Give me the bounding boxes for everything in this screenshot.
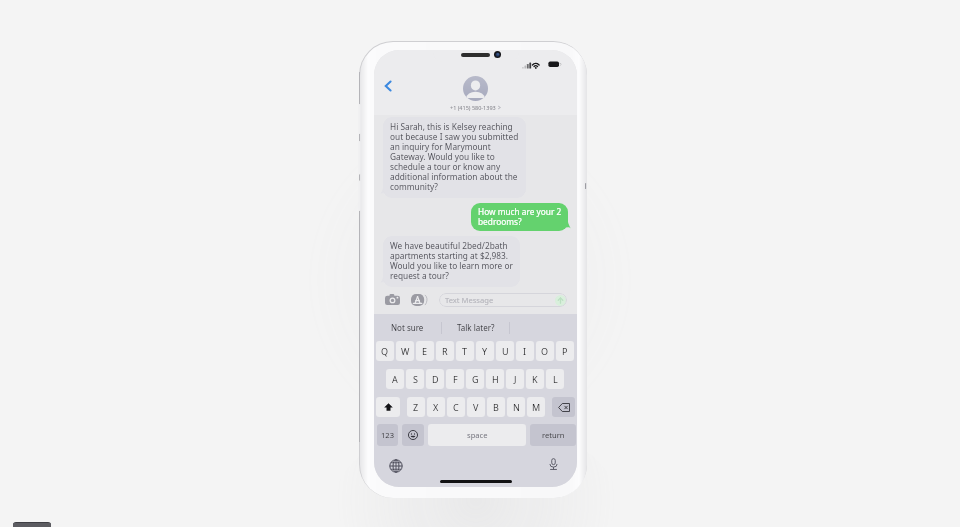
staticText: P [562,345,568,357]
button[interactable]: I [516,341,534,361]
button[interactable]: Contact avatar [463,76,488,101]
staticText: C [453,401,459,413]
staticText: J [514,373,517,385]
button[interactable]: U [496,341,514,361]
staticText: Q [381,345,389,357]
staticText: O [541,345,549,357]
staticText: F [453,373,458,385]
button[interactable]: Emoji [402,424,424,446]
button[interactable]: Dictate [547,458,560,471]
button[interactable]: T [456,341,474,361]
button[interactable]: Send [555,295,566,306]
staticText: Not sure [391,322,424,333]
button[interactable]: M [527,397,545,417]
button[interactable]: Q [376,341,394,361]
staticText: return [542,430,565,440]
button[interactable]: B [487,397,505,417]
staticText: A [392,373,398,385]
button[interactable]: R [436,341,454,361]
button[interactable]: P [556,341,574,361]
staticText: How much are your 2 bedrooms? [478,206,562,227]
staticText: I [523,345,527,357]
button[interactable]: Z [407,397,425,417]
button[interactable]: C [447,397,465,417]
button[interactable]: Shift [376,397,400,417]
button[interactable]: J [506,369,524,389]
staticText: W [401,345,410,357]
staticText: We have beautiful 2bed/2bath apartments … [390,240,514,281]
button[interactable]: K [526,369,544,389]
staticText: E [422,345,428,357]
staticText: G [472,373,479,385]
staticText: space [467,430,488,440]
button[interactable]: S [406,369,424,389]
staticText: V [473,401,479,413]
button[interactable]: A [386,369,404,389]
staticText: L [553,373,558,385]
button[interactable]: D [426,369,444,389]
staticText: Text Message [445,295,494,305]
button[interactable]: How much are your 2 bedrooms? [471,203,568,231]
button[interactable]: return [530,424,576,446]
staticText: X [433,401,439,413]
staticText: Y [482,345,488,357]
button[interactable]: Text Message [439,293,567,307]
button[interactable]: Change keyboard [389,459,403,473]
staticText: +1 (415) 580-1393 [450,104,496,111]
staticText: Talk later? [457,322,495,333]
staticText: Z [413,401,419,413]
button[interactable]: Camera [385,294,400,305]
staticText: N [513,401,520,413]
staticText: H [492,373,499,385]
button[interactable]: Backspace [552,397,575,417]
staticText: U [502,345,509,357]
button[interactable]: App Store [411,294,427,306]
staticText: M [532,401,541,413]
staticText: K [532,373,538,385]
staticText: B [493,401,499,413]
button[interactable]: V [467,397,485,417]
button[interactable]: W [396,341,414,361]
button[interactable]: X [427,397,445,417]
button[interactable]: 123 [377,424,398,446]
staticText: T [462,345,468,357]
button[interactable]: Talk later? [442,314,509,341]
staticText: S [413,373,418,385]
button[interactable]: space [428,424,526,446]
button[interactable]: G [466,369,484,389]
button[interactable]: Back [380,78,396,94]
button[interactable]: L [546,369,564,389]
button[interactable]: Hi Sarah, this is Kelsey reaching out be… [383,117,526,198]
button[interactable]: H [486,369,504,389]
staticText: Hi Sarah, this is Kelsey reaching out be… [390,121,520,192]
staticText: 123 [381,430,395,440]
button[interactable]: E [416,341,434,361]
button[interactable]: F [446,369,464,389]
button[interactable]: O [536,341,554,361]
button[interactable]: Y [476,341,494,361]
button[interactable]: N [507,397,525,417]
staticText: D [432,373,439,385]
button[interactable]: Playback controls [13,522,51,527]
button[interactable]: Not sure [374,314,441,341]
button[interactable]: We have beautiful 2bed/2bath apartments … [383,236,520,287]
staticText: R [442,345,448,357]
